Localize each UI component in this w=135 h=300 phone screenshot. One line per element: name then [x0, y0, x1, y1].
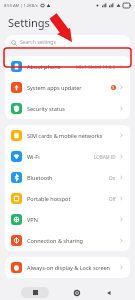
staticText: System apps updater: [27, 84, 82, 91]
staticText: Settings: [8, 15, 50, 30]
staticText: SIM cards & mobile networks: [27, 132, 103, 139]
staticText: Off: [109, 196, 116, 202]
staticText: Always-on display & Lock screen: [27, 264, 110, 271]
button[interactable]: Portable hotspot: [5, 188, 130, 209]
staticText: Bluetooth: [27, 174, 53, 181]
staticText: Security status: [27, 105, 65, 112]
staticText: Portable hotspot: [27, 195, 71, 202]
staticText: About phone: [27, 63, 61, 70]
button[interactable]: Home: [71, 287, 82, 298]
staticText: VPN: [27, 216, 38, 223]
button[interactable]: System apps updater: [5, 77, 130, 98]
staticText: MIUI Global 14.0.2: [76, 64, 116, 70]
button[interactable]: Search settings: [5, 35, 130, 50]
button[interactable]: SIM cards & mobile networks: [5, 125, 130, 146]
staticText: 8:50 AM | 1.2KB/s: [4, 3, 38, 8]
button[interactable]: Wi-Fi: [5, 146, 130, 167]
staticText: On: [109, 175, 116, 181]
button[interactable]: About phone: [5, 56, 130, 77]
button[interactable]: Back: [103, 287, 114, 298]
staticText: Search settings: [20, 39, 56, 46]
button[interactable]: Recents: [21, 287, 49, 298]
button[interactable]: Bluetooth: [5, 167, 130, 188]
staticText: LOBAM ID: [94, 154, 116, 160]
staticText: 1: [112, 85, 115, 90]
button[interactable]: Connection & sharing: [5, 230, 130, 251]
button[interactable]: VPN: [5, 209, 130, 230]
staticText: Wi-Fi: [27, 153, 40, 160]
button[interactable]: Always-on display & Lock screen: [5, 257, 130, 278]
staticText: Connection & sharing: [27, 237, 83, 244]
button[interactable]: Security status: [5, 98, 130, 119]
